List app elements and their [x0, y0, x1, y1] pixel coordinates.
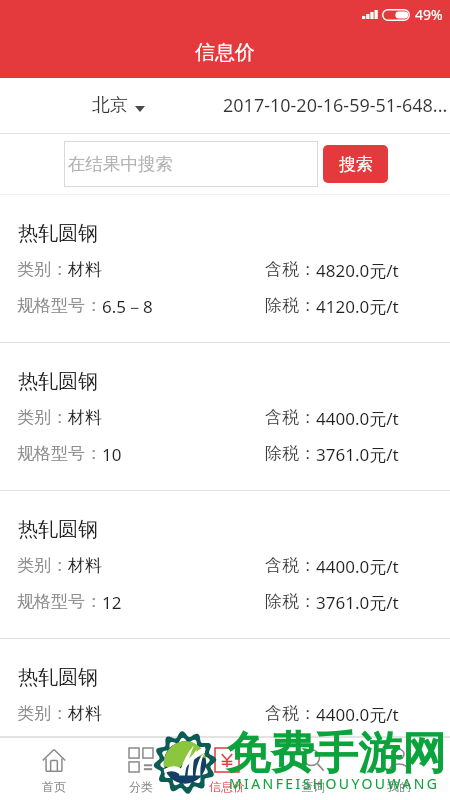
button[interactable]: 热轧圆钢	[0, 195, 450, 343]
staticText: 含税：	[265, 407, 316, 428]
staticText: 我的	[387, 779, 411, 794]
staticText: 类别：	[17, 703, 68, 724]
staticText: 在结果中搜索	[68, 153, 173, 175]
staticText: 4400.0元/t	[316, 703, 399, 726]
staticText: 含税：	[265, 259, 316, 280]
staticText: 10	[102, 443, 122, 466]
staticText: 4820.0元/t	[316, 259, 399, 282]
staticText: 含税：	[265, 555, 316, 576]
staticText: 搜索	[339, 154, 373, 175]
staticText: 北京	[92, 94, 128, 117]
staticText: 除税：	[265, 443, 316, 464]
staticText: 3761.0元/t	[316, 591, 399, 614]
staticText: 规格型号：	[17, 591, 102, 612]
staticText: 除税：	[265, 591, 316, 612]
staticText: 4400.0元/t	[316, 555, 399, 578]
button[interactable]: 热轧圆钢	[0, 639, 450, 737]
button[interactable]: 信息价	[184, 738, 270, 800]
staticText: 信息价	[209, 779, 245, 794]
button[interactable]: 查询	[270, 738, 356, 800]
staticText: 除税：	[265, 295, 316, 316]
staticText: 热轧圆钢	[18, 517, 98, 542]
staticText: 12	[102, 591, 122, 614]
staticText: 含税：	[265, 703, 316, 724]
staticText: 免费手游网	[226, 726, 450, 781]
button[interactable]: 在结果中搜索	[64, 141, 318, 187]
staticText: 规格型号：	[17, 295, 102, 316]
staticText: 热轧圆钢	[18, 221, 98, 246]
staticText: 49%	[415, 5, 443, 24]
button[interactable]: 分类	[97, 738, 184, 800]
staticText: 信息价	[195, 40, 255, 65]
button[interactable]: 2017-10-20-16-59-51-648...	[223, 93, 448, 118]
staticText: 热轧圆钢	[18, 369, 98, 394]
staticText: MIANFEISHOUYOUWANG	[229, 774, 450, 793]
staticText: 材料	[68, 703, 102, 724]
button[interactable]: 我的	[356, 738, 442, 800]
staticText: 首页	[42, 779, 66, 794]
button[interactable]: 热轧圆钢	[0, 491, 450, 639]
staticText: 类别：	[17, 407, 68, 428]
staticText: 4120.0元/t	[316, 295, 399, 318]
staticText: 材料	[68, 407, 102, 428]
staticText: 规格型号：	[17, 443, 102, 464]
staticText: 材料	[68, 259, 102, 280]
staticText: 热轧圆钢	[18, 665, 98, 690]
staticText: 6.5－8	[102, 295, 153, 318]
staticText: 类别：	[17, 259, 68, 280]
staticText: 分类	[129, 779, 153, 794]
staticText: 4400.0元/t	[316, 407, 399, 430]
button[interactable]: 北京	[0, 78, 236, 133]
button[interactable]: 搜索	[323, 145, 388, 183]
button[interactable]: 热轧圆钢	[0, 343, 450, 491]
staticText: 3761.0元/t	[316, 443, 399, 466]
staticText: 材料	[68, 555, 102, 576]
staticText: 类别：	[17, 555, 68, 576]
button[interactable]: 首页	[10, 738, 97, 800]
staticText: 查询	[301, 779, 325, 794]
